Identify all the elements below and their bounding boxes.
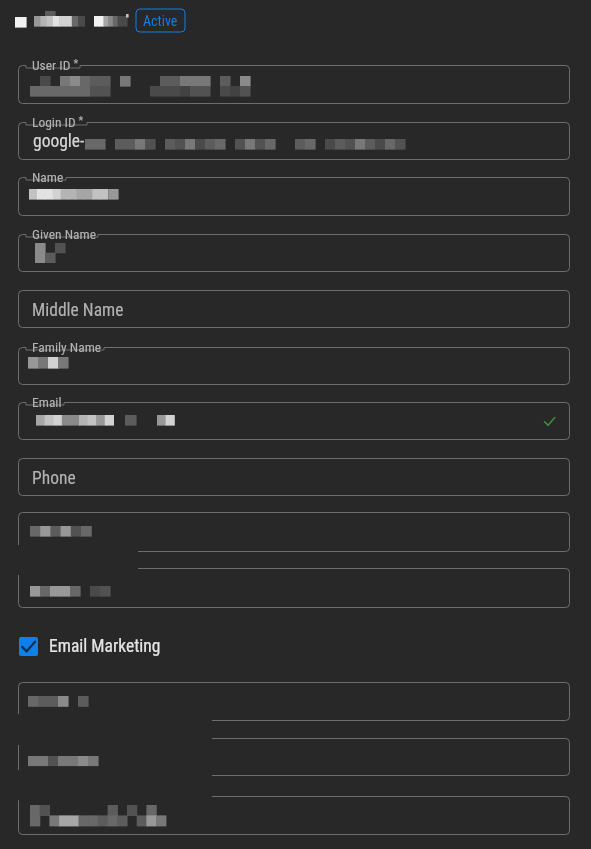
button[interactable]: Email Marketing [19,636,161,657]
button[interactable] [18,568,570,608]
staticText: Email Marketing [49,636,161,657]
staticText: Email [32,394,62,410]
button[interactable]: Phone [18,458,570,496]
staticText: * [76,114,84,127]
staticText: google- [33,131,85,152]
button[interactable] [18,738,570,776]
button[interactable] [18,177,570,216]
staticText: Given Name [32,226,97,242]
button[interactable] [18,234,570,272]
staticText: Phone [32,468,76,489]
button[interactable]: google- [18,122,570,160]
staticText: Family Name [32,339,102,355]
button[interactable] [18,796,570,835]
button[interactable] [18,347,570,385]
staticText: * [71,57,79,70]
staticText: Active [143,13,178,29]
staticText: Middle Name [32,300,124,321]
button[interactable] [18,682,570,721]
button[interactable] [18,65,570,104]
other: Verified [542,414,557,429]
button[interactable] [18,512,570,552]
staticText: Name [32,169,64,185]
button[interactable]: Active [136,9,185,32]
staticText: Login ID [32,114,76,130]
button[interactable]: Middle Name [18,290,570,328]
staticText: User ID [32,57,71,73]
button[interactable]: Verified [18,402,570,440]
